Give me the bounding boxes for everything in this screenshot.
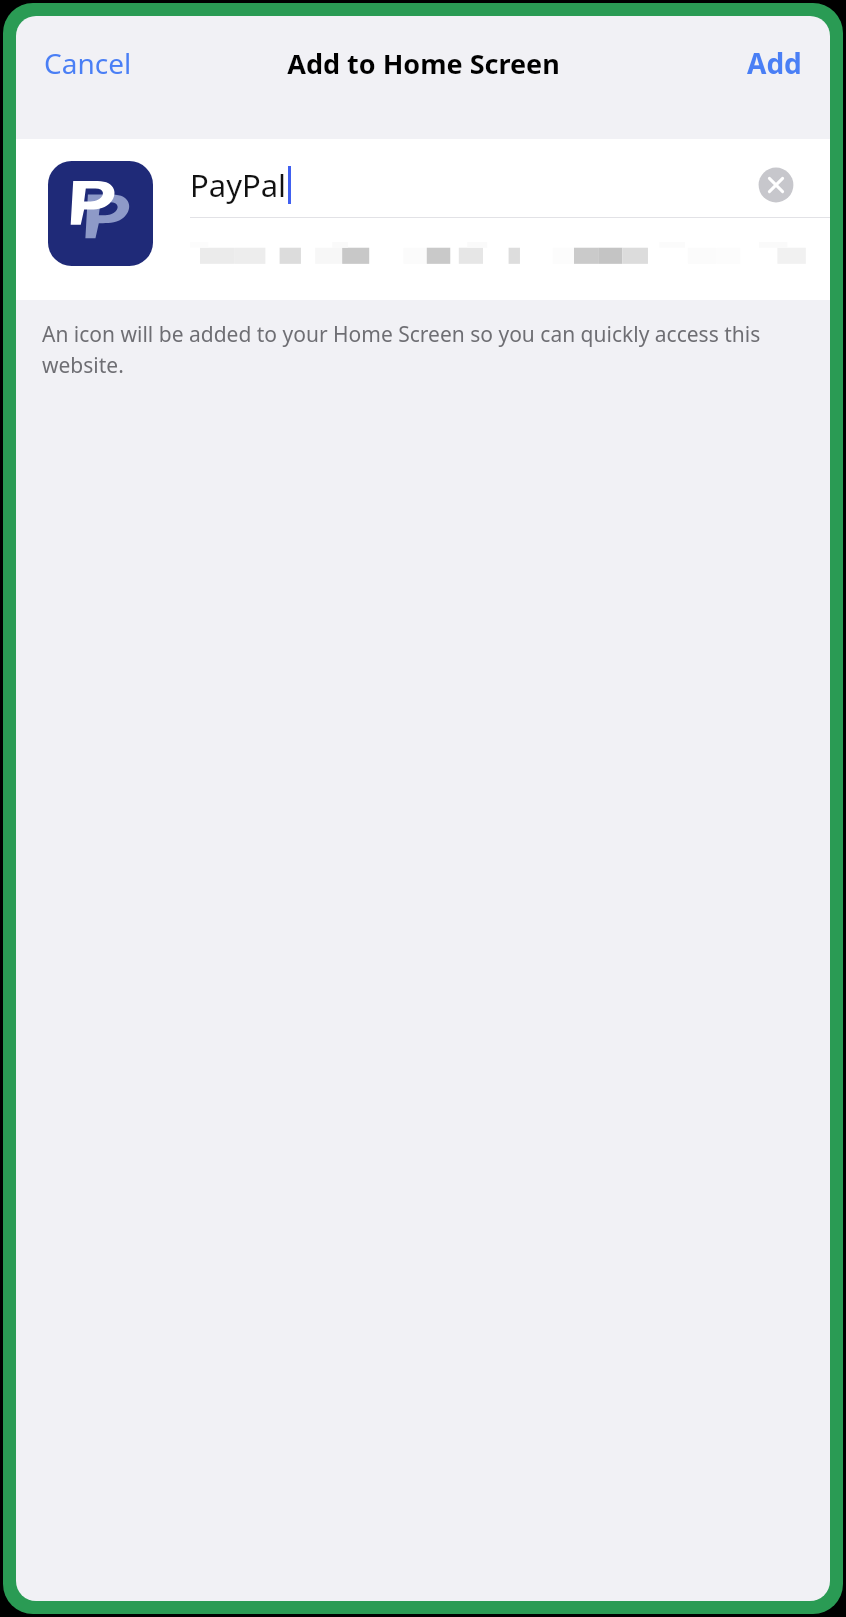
staticText: An icon will be added to your Home Scree… (42, 320, 804, 379)
button[interactable]: Cancel (30, 36, 146, 90)
staticText: PayPal (190, 164, 287, 206)
button[interactable]: Clear text (754, 163, 798, 207)
staticText: Cancel (44, 44, 132, 82)
staticText: Add (747, 44, 802, 82)
button[interactable]: Add (733, 36, 816, 90)
staticText: Add to Home Screen (287, 45, 560, 82)
